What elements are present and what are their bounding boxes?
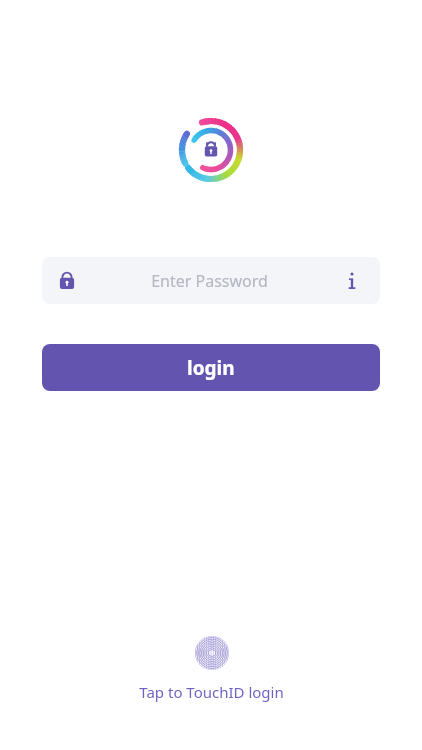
staticText: Enter Password [151, 270, 268, 292]
button[interactable]: Tap to TouchID login [121, 630, 302, 708]
button[interactable]: login [42, 344, 380, 391]
button[interactable]: Password info [340, 269, 364, 293]
staticText: login [187, 355, 235, 381]
button[interactable]: Enter Password [42, 257, 380, 304]
staticText: Tap to TouchID login [139, 682, 284, 702]
